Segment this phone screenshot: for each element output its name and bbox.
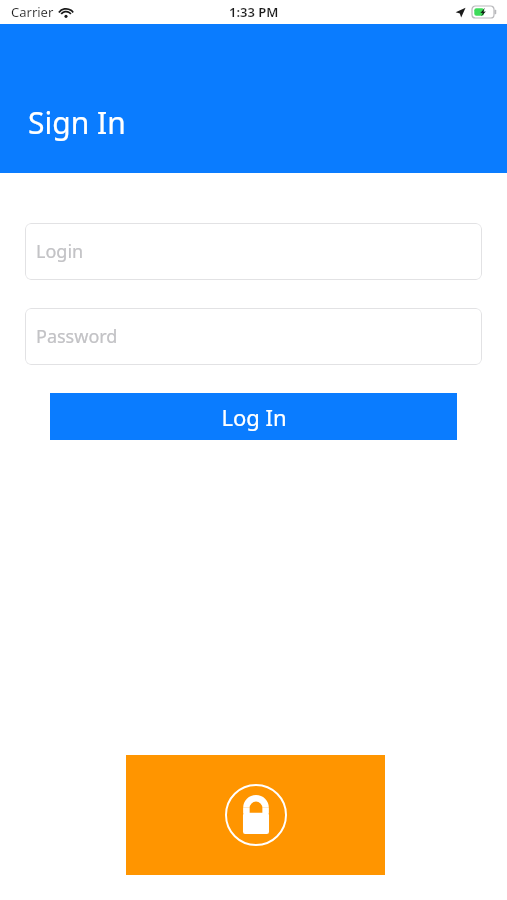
staticText: 1:33 PM bbox=[229, 3, 279, 21]
staticText: Log In bbox=[221, 402, 287, 432]
button[interactable]: Unlock bbox=[126, 755, 385, 875]
button[interactable]: Log In bbox=[50, 393, 457, 440]
button[interactable]: Password bbox=[25, 308, 482, 365]
staticText: Password bbox=[36, 324, 118, 349]
staticText: Sign In bbox=[28, 102, 126, 143]
staticText: Login bbox=[36, 239, 84, 264]
staticText: Carrier bbox=[11, 3, 54, 21]
button[interactable]: Login bbox=[25, 223, 482, 280]
